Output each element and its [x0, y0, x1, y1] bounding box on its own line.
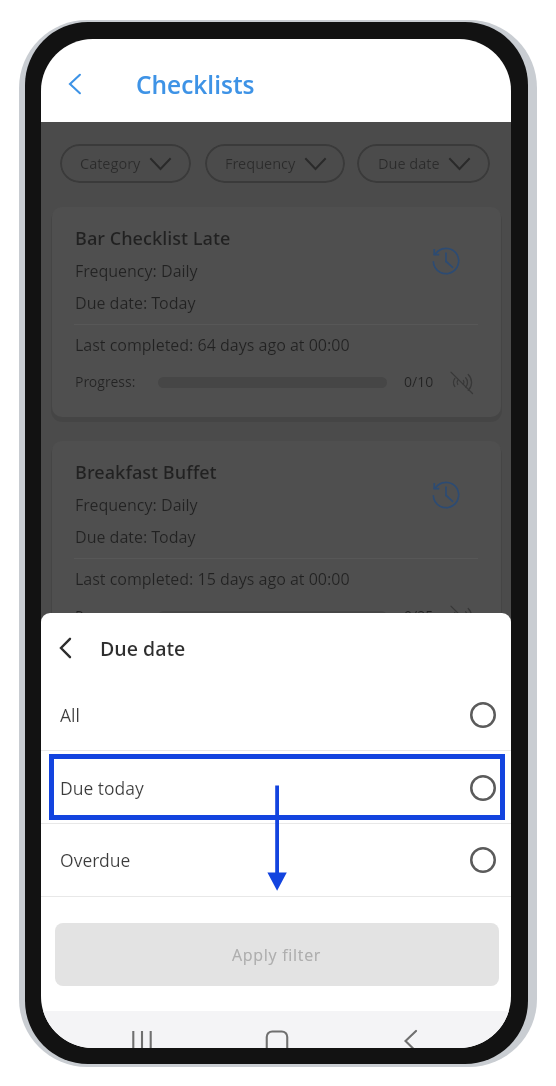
staticText: 0/10 [404, 372, 434, 391]
staticText: Progress: [75, 372, 136, 391]
button[interactable]: History [431, 480, 461, 510]
button[interactable]: Frequency [205, 144, 345, 183]
staticText: Breakfast Buffet [75, 460, 217, 485]
button[interactable]: History [431, 246, 461, 276]
staticText: Due date [100, 635, 186, 662]
staticText: Checklists [136, 68, 255, 101]
staticText: Due date: Today [75, 526, 196, 548]
staticText: Frequency: Daily [75, 260, 198, 282]
button[interactable]: Recents [120, 1011, 164, 1048]
button[interactable]: Category [60, 144, 191, 183]
button[interactable]: Due date [357, 144, 490, 183]
staticText: Due date [378, 154, 440, 174]
staticText: Apply filter [232, 944, 322, 966]
staticText: Last completed: 64 days ago at 00:00 [75, 334, 350, 356]
staticText: Overdue [60, 848, 131, 872]
button[interactable]: Overdue [41, 824, 511, 897]
staticText: Frequency [225, 154, 296, 174]
staticText: Bar Checklist Late [75, 226, 231, 251]
staticText: Progress: [75, 606, 136, 625]
button[interactable]: Notifications off [449, 603, 473, 627]
button[interactable]: Back [394, 1011, 438, 1048]
button[interactable]: Bar Checklist Late [52, 207, 501, 417]
button[interactable]: Apply filter [55, 923, 499, 986]
staticText: Due today [60, 776, 144, 800]
staticText: Due date: Today [75, 292, 196, 314]
staticText: 0/25 [404, 606, 434, 625]
button[interactable]: Home [255, 1011, 299, 1048]
staticText: Category [80, 154, 141, 174]
button[interactable]: Breakfast Buffet [52, 441, 501, 651]
button[interactable]: All [41, 678, 511, 751]
staticText: Last completed: 15 days ago at 00:00 [75, 568, 350, 590]
staticText: Frequency: Daily [75, 494, 198, 516]
staticText: All [60, 703, 80, 727]
button[interactable]: Back [48, 62, 92, 106]
button[interactable]: Back [41, 627, 82, 669]
button[interactable]: Due today [41, 751, 511, 824]
button[interactable]: Notifications off [449, 369, 473, 393]
